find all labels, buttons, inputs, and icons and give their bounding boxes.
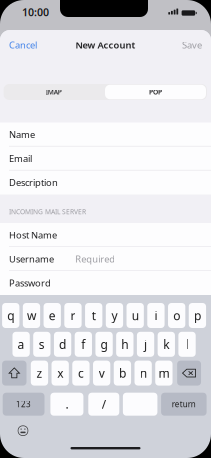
button[interactable]: c (72, 361, 90, 386)
button[interactable]: Delete (177, 361, 201, 386)
button[interactable]: Host Name (0, 223, 211, 247)
button[interactable]: b (114, 361, 131, 386)
button[interactable]: q (2, 303, 19, 328)
button[interactable]: j (137, 332, 154, 357)
staticText: s (39, 336, 45, 352)
staticText: z (36, 365, 42, 381)
staticText: t (92, 307, 96, 323)
staticText: Password (9, 277, 51, 289)
button[interactable]: e (44, 303, 61, 328)
staticText: x (57, 365, 63, 381)
staticText: d (59, 336, 66, 352)
staticText: . (65, 396, 68, 412)
button[interactable]: l (178, 332, 196, 357)
button[interactable]: i (147, 303, 165, 328)
staticText: Email (9, 152, 32, 165)
button[interactable]: f (75, 332, 92, 357)
staticText: k (163, 336, 169, 352)
button[interactable]: Username (0, 247, 211, 271)
staticText: j (144, 336, 147, 352)
button[interactable]: Password (0, 271, 211, 295)
staticText: Cancel (9, 39, 37, 51)
button[interactable]: d (54, 332, 71, 357)
button[interactable]: return (161, 393, 207, 416)
button[interactable]: / (88, 393, 119, 416)
staticText: f (81, 336, 85, 352)
button[interactable]: y (106, 303, 123, 328)
staticText: r (70, 307, 75, 323)
button[interactable]: z (31, 361, 48, 386)
staticText: POP (149, 88, 162, 96)
staticText: Description (9, 176, 58, 189)
button[interactable]: Email (0, 146, 211, 170)
button[interactable]: . (50, 393, 83, 416)
staticText: o (173, 307, 180, 323)
staticText: 10:00 (22, 5, 49, 19)
staticText: 123 (16, 399, 31, 409)
staticText: New Account (75, 39, 135, 51)
staticText: / (102, 396, 106, 412)
button[interactable]: Name (0, 122, 211, 146)
staticText: a (18, 336, 25, 352)
staticText: c (78, 365, 84, 381)
button[interactable]: g (95, 332, 113, 357)
button[interactable]: v (93, 361, 110, 386)
button[interactable]: k (158, 332, 175, 357)
button[interactable]: IMAP (4, 84, 104, 100)
button[interactable]: Emoji keyboard (14, 422, 32, 440)
button[interactable]: m (155, 361, 172, 386)
staticText: i (154, 307, 157, 323)
button[interactable]: space (123, 393, 157, 416)
button[interactable]: POP (104, 84, 207, 100)
staticText: INCOMING MAIL SERVER (9, 207, 86, 216)
button[interactable]: n (134, 361, 152, 386)
staticText: e (49, 307, 56, 323)
button[interactable]: r (64, 303, 82, 328)
staticText: return (172, 399, 196, 409)
staticText: l (185, 336, 188, 352)
button[interactable]: Save (151, 33, 211, 57)
staticText: u (132, 307, 139, 323)
staticText: v (99, 365, 105, 381)
staticText: b (119, 365, 126, 381)
staticText: Save (182, 39, 202, 51)
button[interactable]: Shift (2, 361, 26, 386)
staticText: Host Name (9, 229, 57, 241)
staticText: Name (9, 128, 35, 141)
button[interactable]: w (23, 303, 40, 328)
button[interactable]: 123 (3, 393, 44, 416)
button[interactable]: h (116, 332, 133, 357)
staticText: w (27, 307, 36, 323)
staticText: y (111, 307, 117, 323)
staticText: p (194, 307, 201, 323)
button[interactable]: t (85, 303, 102, 328)
staticText: n (140, 365, 147, 381)
button[interactable]: o (168, 303, 185, 328)
staticText: h (121, 336, 128, 352)
button[interactable]: x (51, 361, 69, 386)
button[interactable]: u (126, 303, 144, 328)
staticText: g (101, 336, 108, 352)
button[interactable]: Cancel (0, 33, 60, 57)
staticText: Username (9, 253, 54, 265)
button[interactable]: Description (0, 170, 211, 194)
staticText: q (7, 307, 14, 323)
staticText: IMAP (46, 88, 62, 96)
button[interactable]: s (33, 332, 50, 357)
button[interactable]: p (189, 303, 206, 328)
staticText: m (158, 365, 169, 381)
staticText: Required (75, 253, 115, 265)
button[interactable]: a (12, 332, 30, 357)
